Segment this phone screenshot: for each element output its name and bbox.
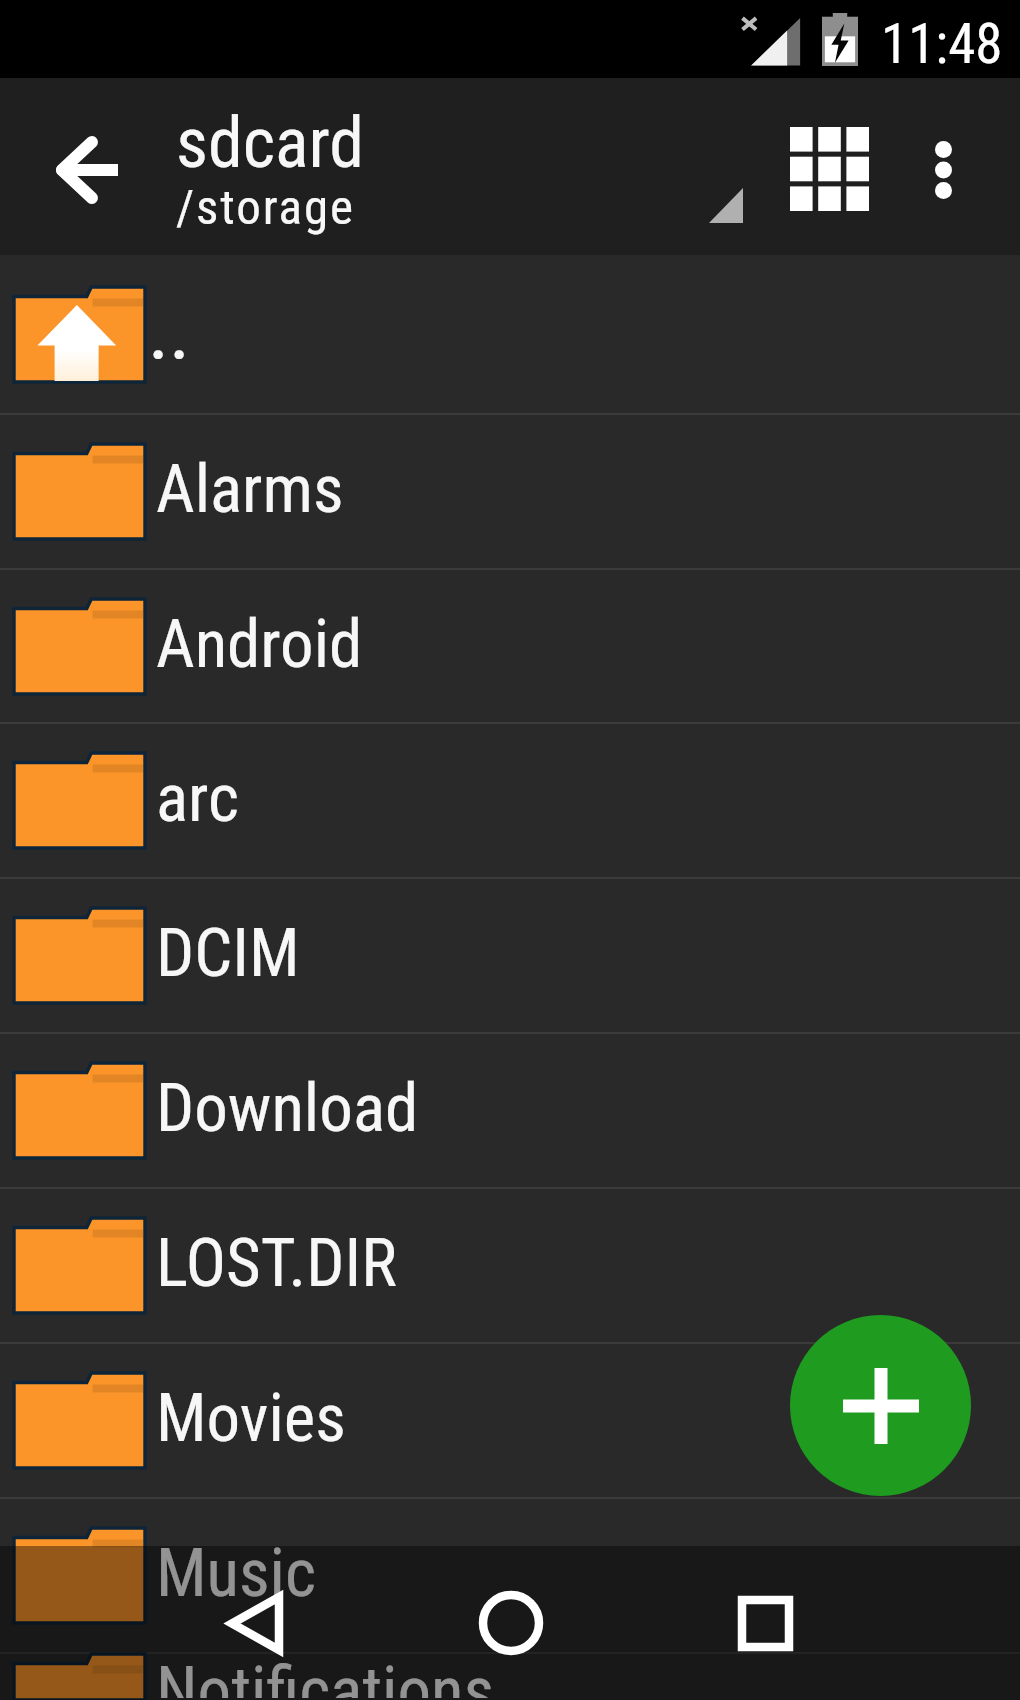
- button[interactable]: ..: [0, 255, 1020, 413]
- staticText: Download: [156, 1069, 419, 1148]
- button[interactable]: DCIM: [0, 879, 1020, 1032]
- staticText: Alarms: [156, 450, 344, 529]
- button[interactable]: LOST.DIR: [0, 1189, 1020, 1342]
- button[interactable]: arc: [0, 724, 1020, 877]
- staticText: Android: [156, 605, 363, 684]
- staticText: Music: [156, 1534, 316, 1613]
- staticText: 11:48: [881, 12, 1003, 76]
- button[interactable]: Notifications: [0, 1654, 1020, 1700]
- staticText: ..: [148, 285, 191, 379]
- button[interactable]: Download: [0, 1034, 1020, 1187]
- staticText: arc: [156, 759, 239, 838]
- button[interactable]: Android: [0, 570, 1020, 722]
- button[interactable]: Back: [128, 1546, 383, 1700]
- staticText: sdcard: [176, 102, 364, 184]
- button[interactable]: Music: [0, 1499, 1020, 1652]
- staticText: DCIM: [156, 914, 300, 993]
- staticText: /storage: [176, 179, 355, 236]
- button[interactable]: More options: [890, 117, 996, 223]
- button[interactable]: Recents: [638, 1546, 893, 1700]
- button[interactable]: Home: [383, 1546, 638, 1700]
- staticText: Movies: [156, 1379, 346, 1458]
- staticText: Notifications: [156, 1652, 495, 1698]
- button[interactable]: Add: [790, 1315, 971, 1496]
- button[interactable]: Grid view: [769, 109, 889, 229]
- button[interactable]: Movies: [0, 1344, 1020, 1497]
- button[interactable]: Back: [37, 120, 137, 220]
- button[interactable]: Alarms: [0, 415, 1020, 568]
- staticText: LOST.DIR: [156, 1224, 397, 1303]
